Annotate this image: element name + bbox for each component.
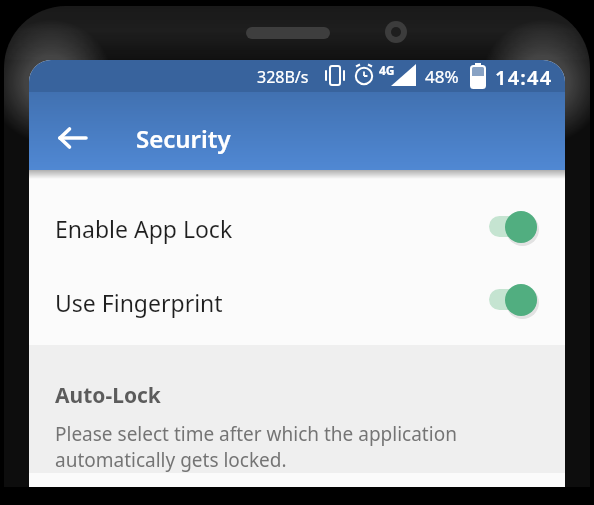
staticText: Auto-Lock <box>55 381 161 410</box>
staticText: Security <box>136 122 231 155</box>
button[interactable] <box>59 128 87 148</box>
staticText: 48% <box>425 65 459 88</box>
button[interactable] <box>489 209 553 245</box>
button[interactable] <box>489 282 553 318</box>
staticText: Use Fingerprint <box>55 287 223 318</box>
staticText: 4G <box>379 62 395 78</box>
button[interactable]: Use Fingerprint <box>29 282 565 322</box>
staticText: Enable App Lock <box>55 213 233 244</box>
staticText: 328B/s <box>257 66 309 88</box>
button[interactable]: Enable App Lock <box>29 208 565 248</box>
staticText: Please select time after which the appli… <box>55 421 457 472</box>
staticText: 14:44 <box>495 64 553 91</box>
